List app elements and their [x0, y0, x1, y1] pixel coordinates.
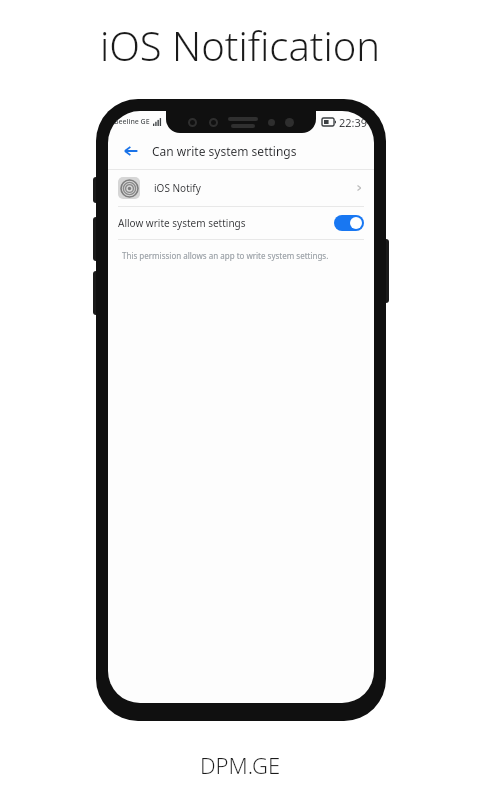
staticText: Beeline GE: [114, 117, 150, 127]
staticText: This permission allows an app to write s…: [122, 250, 329, 261]
button[interactable]: iOS Notify: [108, 170, 374, 206]
staticText: DPM.GE: [0, 750, 480, 780]
button[interactable]: Allow write system settings toggle: [334, 215, 364, 231]
staticText: iOS Notify: [154, 181, 201, 195]
button[interactable]: Allow write system settings: [108, 207, 374, 239]
button[interactable]: Back: [118, 138, 144, 164]
staticText: iOS Notification: [0, 18, 480, 72]
staticText: 22:39: [339, 115, 368, 130]
staticText: Can write system settings: [152, 143, 297, 159]
staticText: Allow write system settings: [118, 216, 246, 230]
